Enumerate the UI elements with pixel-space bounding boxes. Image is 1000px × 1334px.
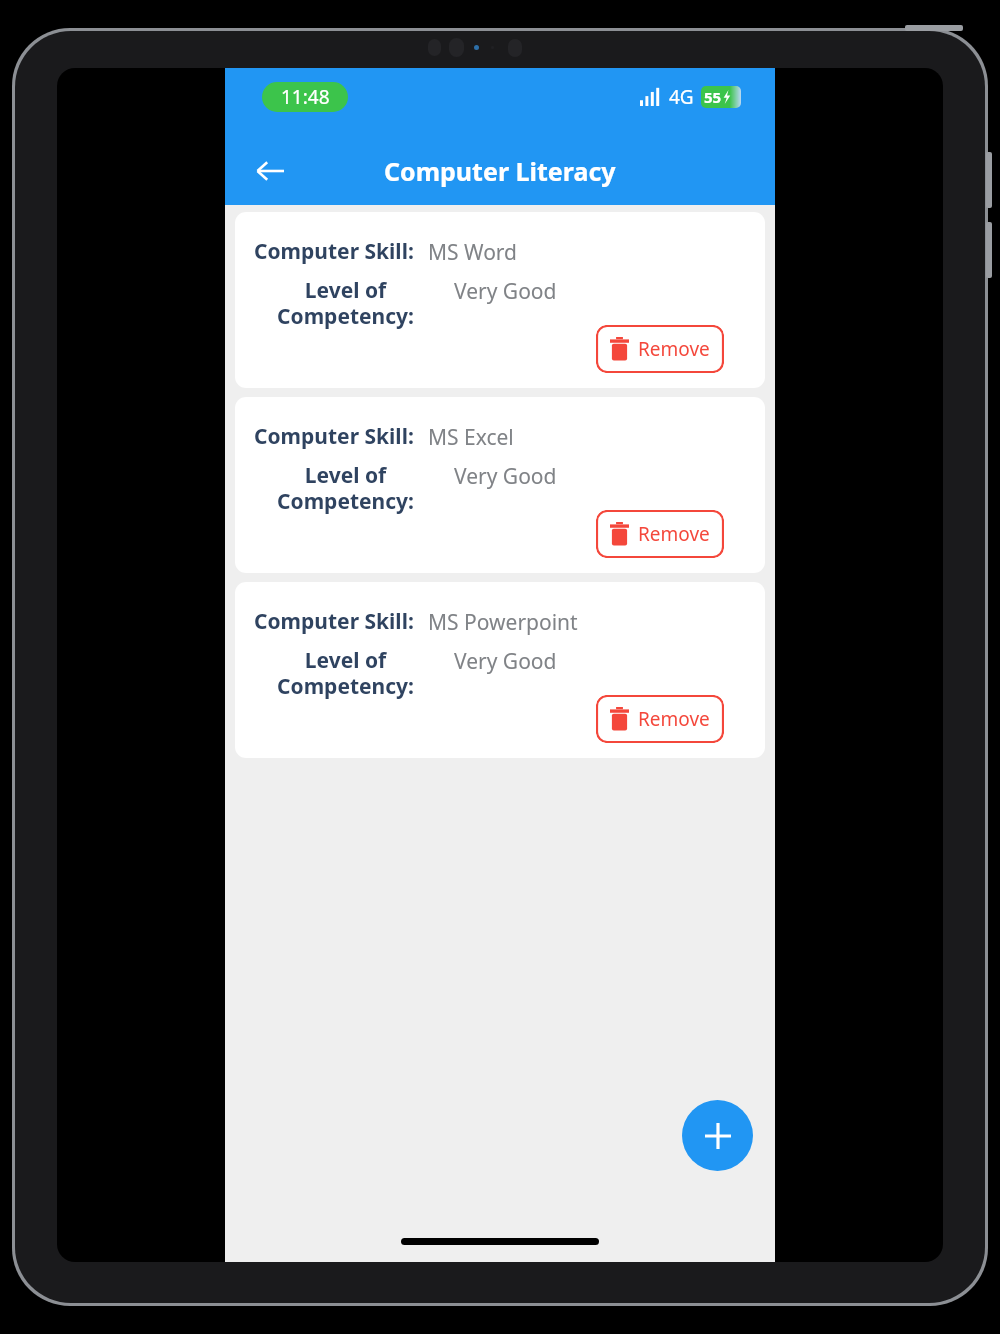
button[interactable]: Computer Skill: — [235, 582, 765, 758]
button[interactable]: Remove — [596, 510, 724, 558]
button[interactable]: Remove — [596, 325, 724, 373]
staticText: 11:48 — [281, 84, 330, 110]
staticText: Remove — [638, 336, 710, 362]
button[interactable]: Back — [247, 148, 293, 194]
staticText: Computer Literacy — [384, 154, 616, 188]
staticText: Computer Skill: — [254, 607, 414, 636]
staticText: MS Powerpoint — [428, 608, 578, 637]
staticText: Computer Skill: — [254, 237, 414, 266]
staticText: 4G — [669, 84, 694, 110]
staticText: Very Good — [454, 277, 557, 306]
staticText: Remove — [638, 521, 710, 547]
staticText: 55 — [704, 87, 722, 107]
staticText: Very Good — [454, 462, 557, 491]
staticText: Computer Skill: — [254, 422, 414, 451]
staticText: Level of Competency: — [277, 276, 414, 330]
button[interactable]: Computer Skill: — [235, 397, 765, 573]
staticText: Very Good — [454, 647, 557, 676]
button[interactable]: Add — [682, 1100, 753, 1171]
staticText: MS Excel — [428, 423, 514, 452]
staticText: Remove — [638, 706, 710, 732]
button[interactable]: Remove — [596, 695, 724, 743]
staticText: Level of Competency: — [277, 646, 414, 700]
button[interactable]: Computer Skill: — [235, 212, 765, 388]
staticText: Level of Competency: — [277, 461, 414, 515]
staticText: MS Word — [428, 238, 518, 267]
